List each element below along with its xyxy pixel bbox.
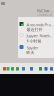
staticText: 1 小时前 [26,38,41,44]
staticText: Community [37,13,52,17]
staticText: 昨天 [26,50,34,55]
button[interactable]: Taskbar app [50,67,53,71]
button[interactable]: Taskbar app [39,67,42,71]
button[interactable]: Taskbar app [6,67,9,71]
button[interactable]: Taskbar app [3,67,6,71]
staticText: Jupyter Notebook [26,33,53,38]
staticText: Spyder [26,45,38,50]
staticText: 最近打开 [26,27,42,32]
button[interactable]: Anaconda Prompt [18,22,54,33]
staticText: PyCharm [37,8,53,13]
button[interactable]: Taskbar app [16,67,19,71]
button[interactable]: Taskbar app [44,67,47,71]
button[interactable]: Taskbar app [30,67,33,71]
button[interactable]: Taskbar app [22,67,25,71]
button[interactable]: Taskbar app [11,67,14,71]
button[interactable]: Spyder [18,45,54,56]
button[interactable]: Jupyter Notebook [18,33,54,44]
staticText: Anaconda Prompt [26,22,53,27]
